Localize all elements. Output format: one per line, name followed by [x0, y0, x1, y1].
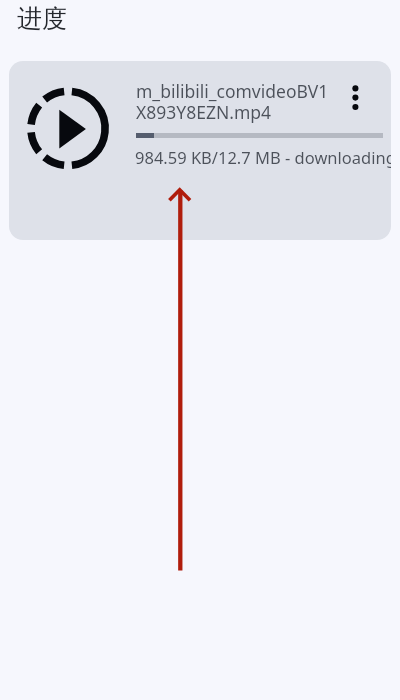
staticText: m_bilibili_comvideoBV1X893Y8EZN.mp4	[136, 79, 336, 124]
button[interactable]: m_bilibili_comvideoBV1X893Y8EZN.mp4	[9, 61, 391, 240]
staticText: 984.59 KB/12.7 MB - downloading	[135, 146, 391, 168]
button[interactable]: More options	[343, 75, 367, 119]
staticText: 进度	[17, 3, 67, 34]
